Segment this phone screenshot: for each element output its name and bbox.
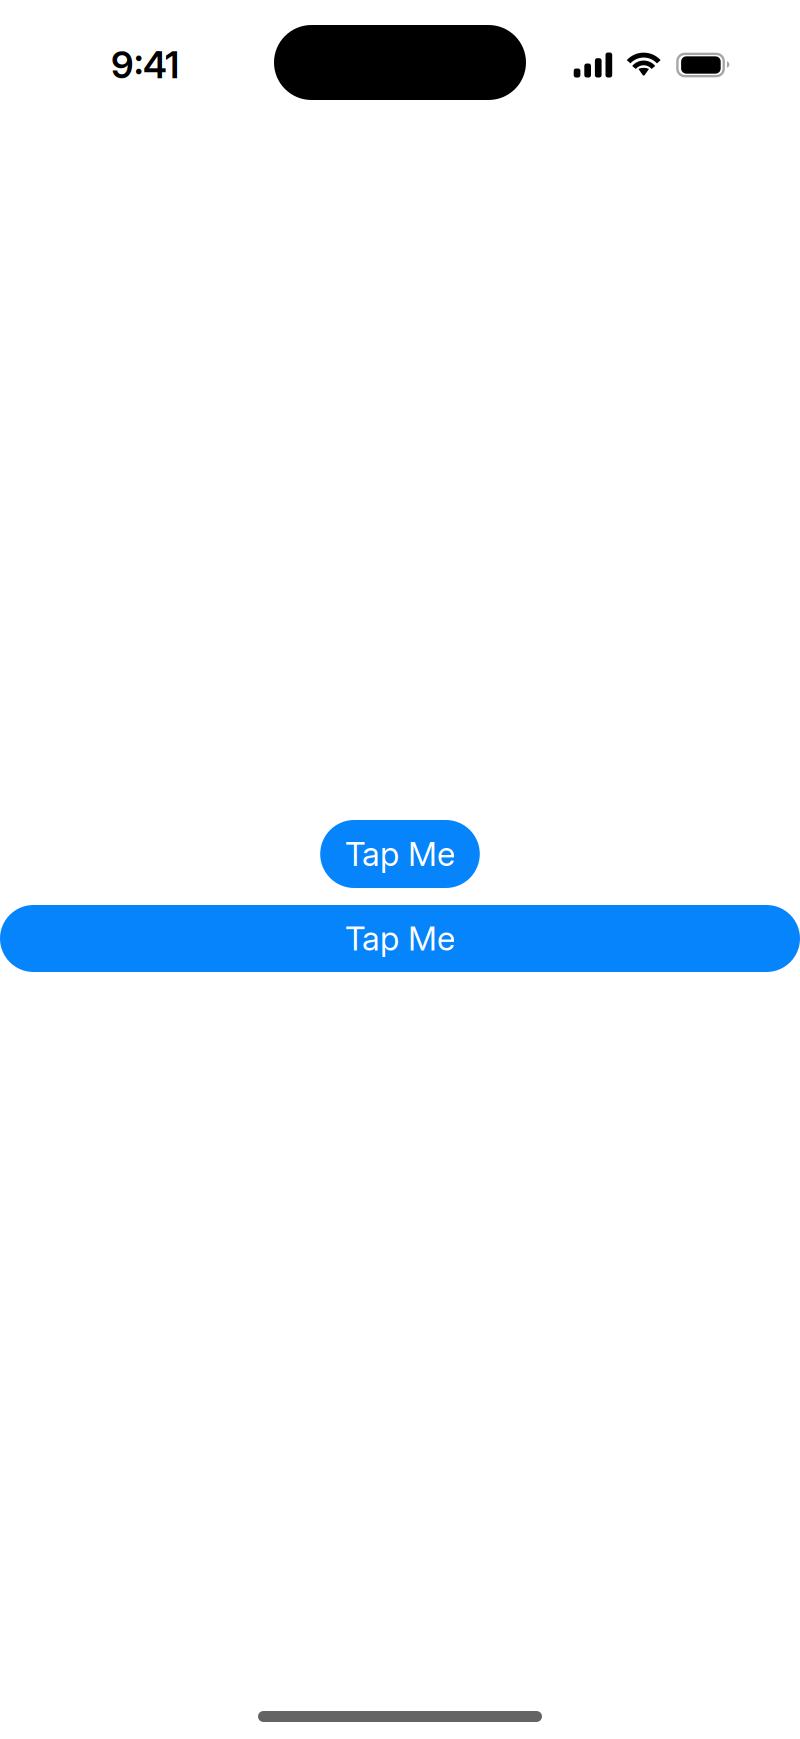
staticText: Tap Me [345,919,455,958]
staticText: 9:41 [111,43,179,87]
button[interactable]: Tap Me [320,820,480,888]
staticText: Tap Me [345,834,455,874]
button[interactable]: Tap Me [0,905,800,972]
